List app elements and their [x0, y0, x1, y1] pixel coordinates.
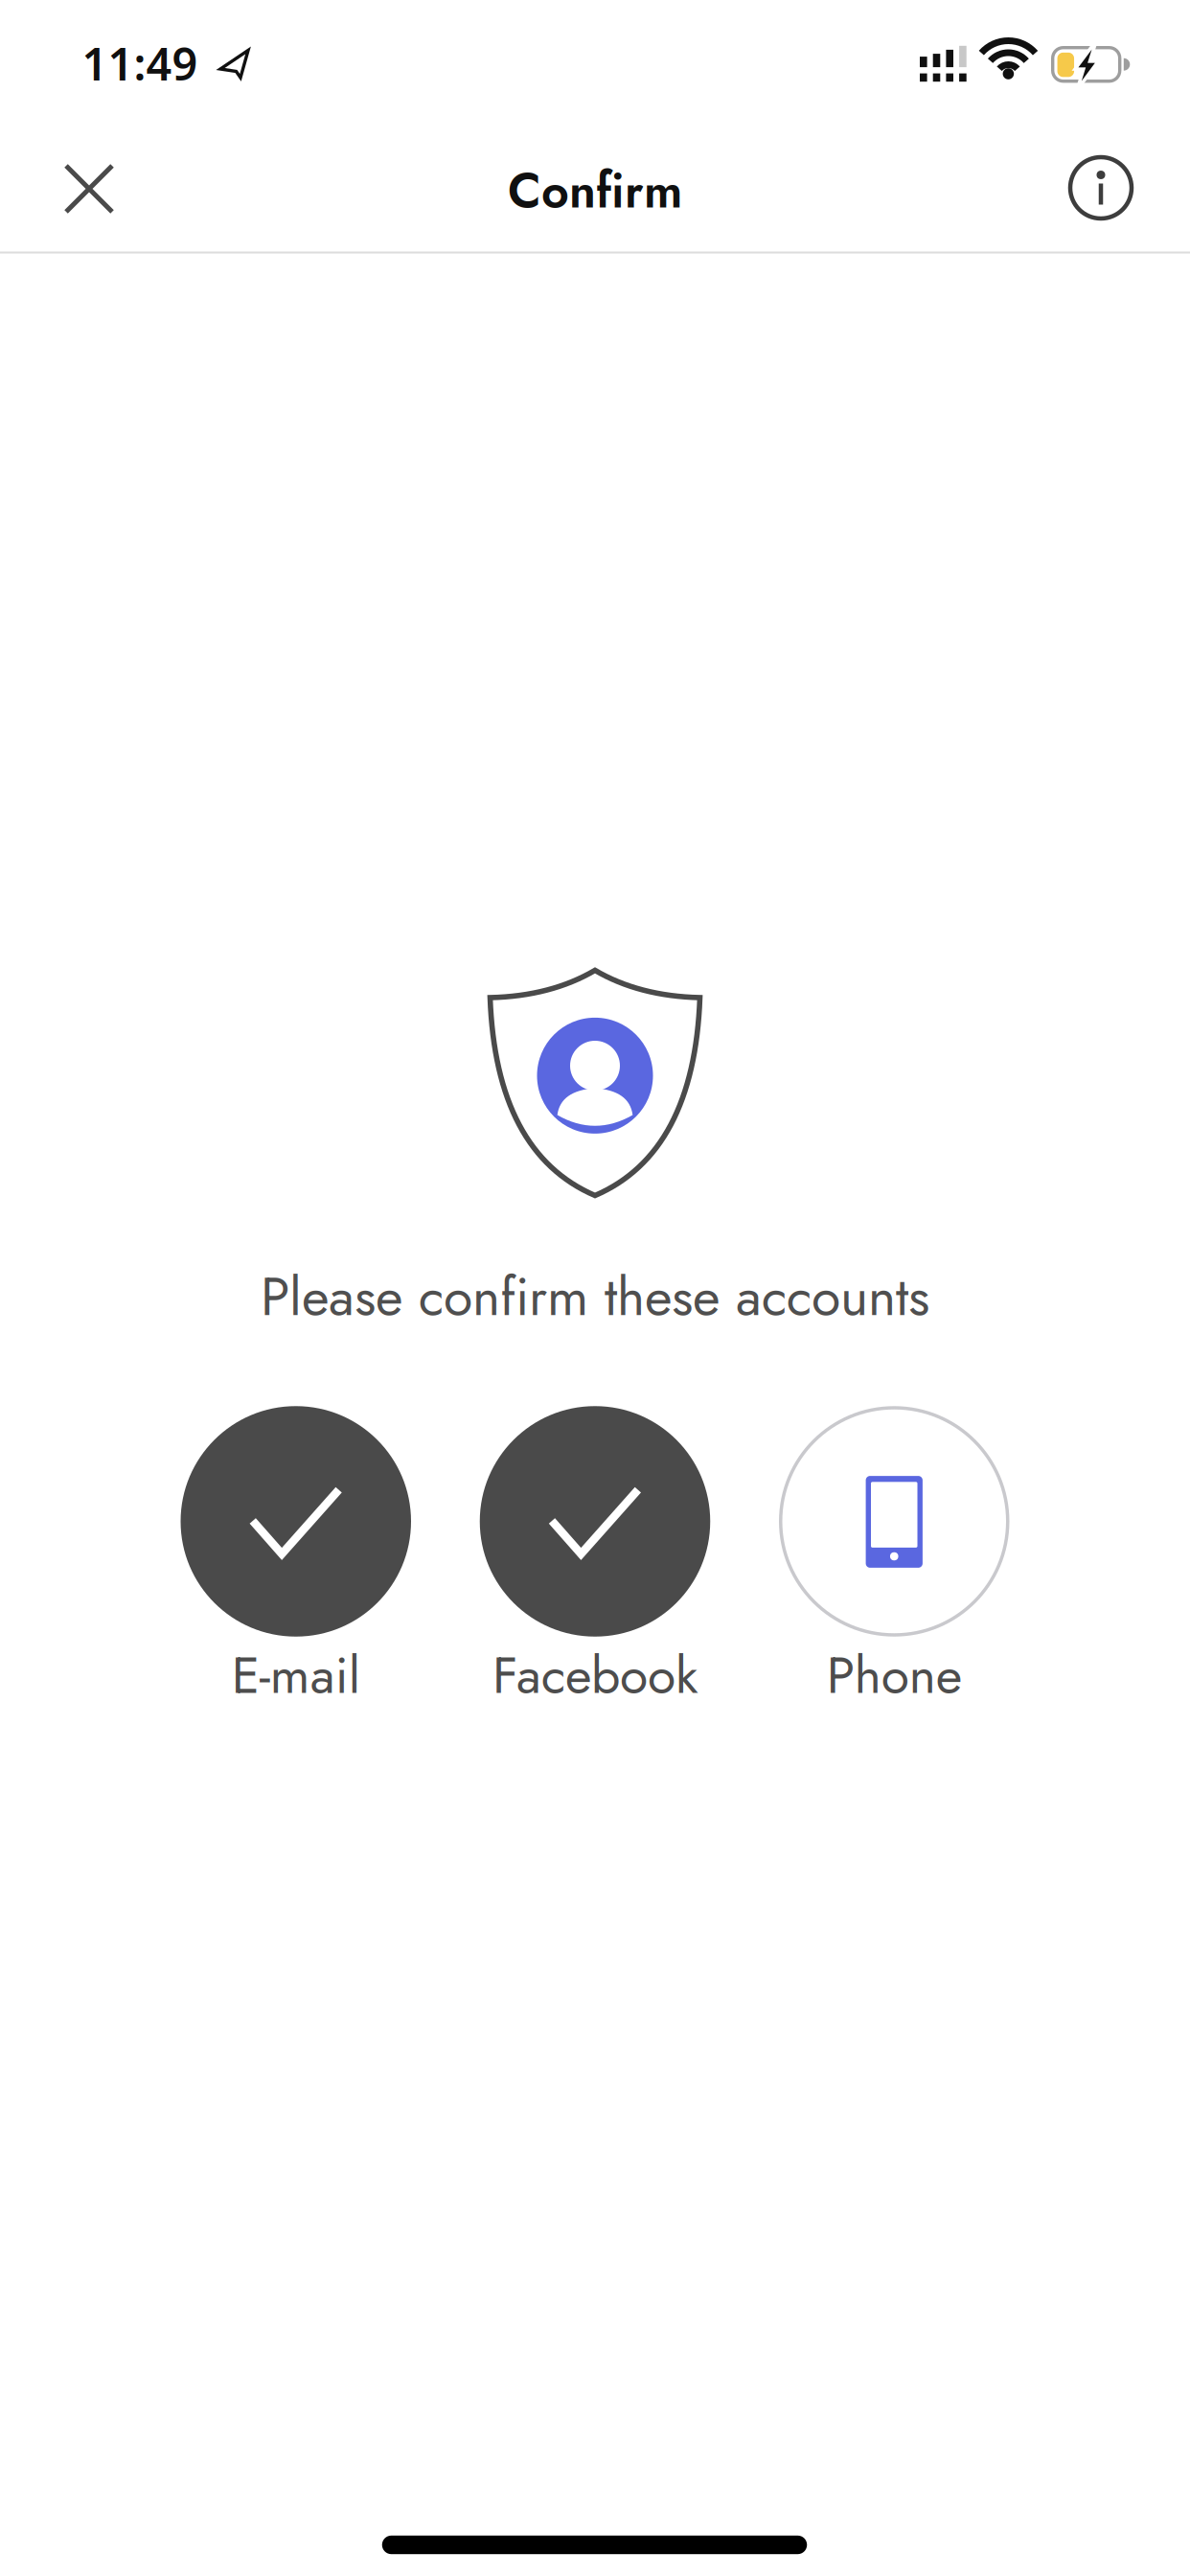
button[interactable]: Phone — [770, 1406, 1019, 1732]
button[interactable]: Close — [47, 147, 131, 231]
button[interactable]: E-mail — [171, 1406, 420, 1732]
staticText: Confirm — [508, 156, 682, 225]
button[interactable]: Info — [1059, 146, 1143, 230]
staticText: 11:49 — [82, 34, 198, 93]
staticText: Please confirm these accounts — [261, 1258, 929, 1335]
button[interactable]: Facebook — [470, 1406, 720, 1732]
staticText: Facebook — [492, 1638, 698, 1712]
staticText: E-mail — [232, 1638, 360, 1712]
staticText: Phone — [827, 1638, 962, 1712]
